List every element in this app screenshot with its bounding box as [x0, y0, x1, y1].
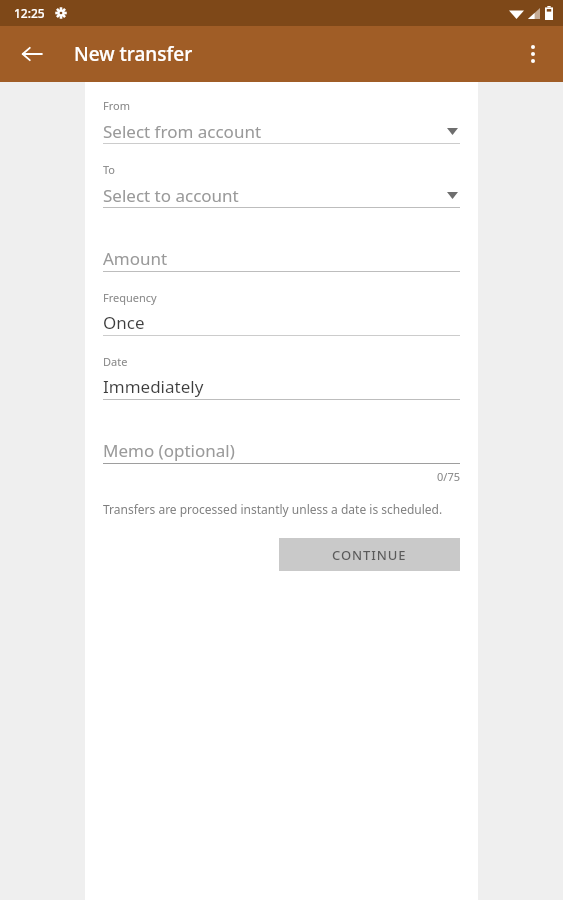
button[interactable]: More options — [509, 30, 557, 78]
staticText: Amount — [103, 247, 168, 270]
staticText: Date — [103, 354, 128, 369]
button[interactable]: Once — [103, 310, 460, 335]
staticText: Memo (optional) — [103, 439, 235, 462]
staticText: Once — [103, 311, 145, 334]
staticText: Transfers are processed instantly unless… — [103, 501, 443, 517]
staticText: To — [103, 162, 116, 177]
staticText: Immediately — [103, 375, 204, 398]
staticText: Select from account — [103, 120, 449, 143]
staticText: From — [103, 98, 130, 113]
button[interactable]: Memo (optional) — [103, 437, 460, 463]
button[interactable]: Select to account — [103, 183, 460, 207]
button[interactable]: Immediately — [103, 374, 460, 399]
button[interactable]: Amount — [103, 245, 460, 271]
staticText: New transfer — [74, 41, 193, 67]
staticText: Frequency — [103, 290, 157, 305]
button[interactable]: Select from account — [103, 119, 460, 143]
staticText: 0/75 — [103, 469, 460, 484]
staticText: CONTINUE — [332, 546, 407, 564]
staticText: 12:25 — [14, 5, 45, 21]
button[interactable]: Back — [8, 30, 56, 78]
staticText: Select to account — [103, 184, 449, 207]
button[interactable]: CONTINUE — [279, 538, 460, 571]
